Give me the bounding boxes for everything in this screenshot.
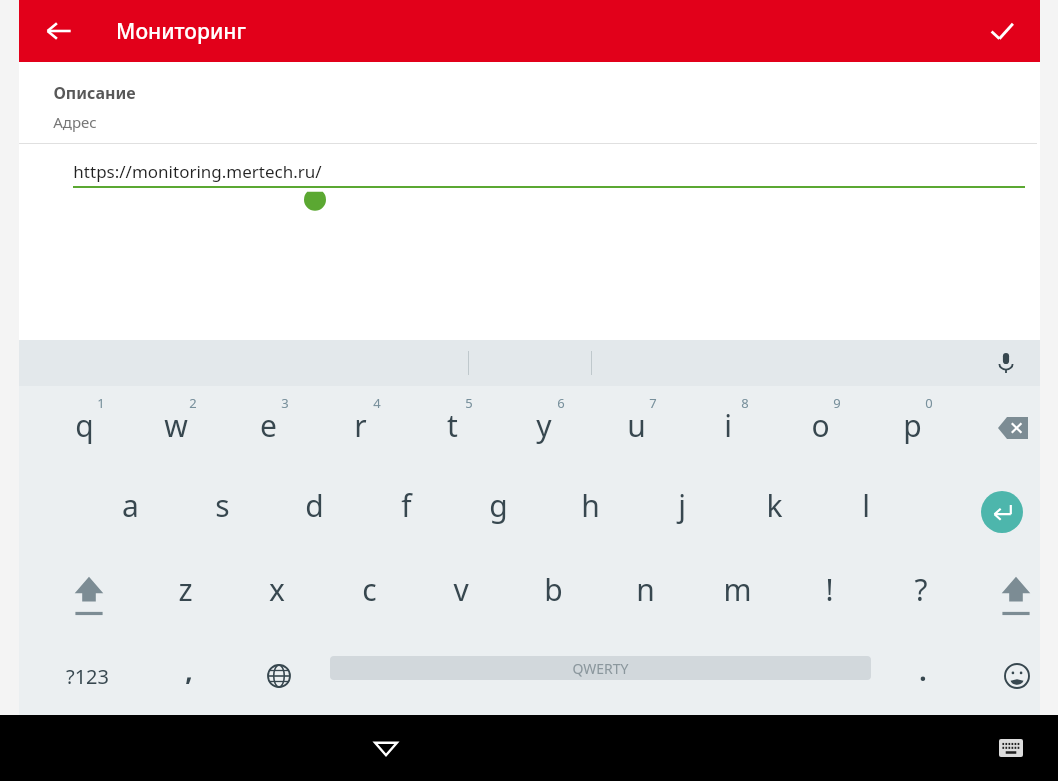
- button[interactable]: v: [415, 554, 507, 638]
- staticText: c: [362, 569, 377, 610]
- button[interactable]: 3: [222, 386, 314, 470]
- button[interactable]: a: [84, 470, 176, 554]
- staticText: h: [581, 485, 600, 526]
- button[interactable]: b: [507, 554, 599, 638]
- staticText: k: [766, 485, 783, 526]
- button[interactable]: x: [231, 554, 323, 638]
- button[interactable]: 4: [314, 386, 406, 470]
- staticText: .: [919, 653, 927, 688]
- button[interactable]: h: [544, 470, 636, 554]
- staticText: v: [453, 569, 469, 610]
- button[interactable]: Backspace: [969, 386, 1057, 470]
- button[interactable]: 9: [774, 386, 866, 470]
- button[interactable]: .: [887, 638, 959, 714]
- button[interactable]: 2: [130, 386, 222, 470]
- staticText: u: [627, 405, 646, 446]
- staticText: QWERTY: [572, 659, 629, 678]
- button[interactable]: ?: [875, 554, 967, 638]
- button[interactable]: !: [783, 554, 875, 638]
- staticText: y: [536, 405, 552, 446]
- staticText: 8: [741, 394, 749, 412]
- staticText: m: [723, 569, 752, 610]
- button[interactable]: Shift: [970, 554, 1058, 638]
- staticText: q: [75, 405, 94, 446]
- button[interactable]: ?123: [39, 638, 135, 714]
- staticText: Описание: [53, 82, 136, 104]
- staticText: j: [678, 485, 686, 526]
- staticText: w: [164, 405, 188, 446]
- button[interactable]: Emoji: [981, 638, 1053, 714]
- staticText: r: [354, 405, 367, 446]
- button[interactable]: Switch keyboard: [984, 721, 1038, 775]
- button[interactable]: Voice input: [986, 343, 1026, 383]
- button[interactable]: j: [636, 470, 728, 554]
- button[interactable]: Change language: [241, 638, 317, 714]
- staticText: n: [636, 569, 655, 610]
- button[interactable]: 1: [38, 386, 130, 470]
- button[interactable]: 5: [406, 386, 498, 470]
- button[interactable]: 7: [590, 386, 682, 470]
- staticText: 2: [189, 394, 197, 412]
- staticText: 4: [373, 394, 381, 412]
- button[interactable]: Back: [31, 3, 87, 59]
- staticText: ?123: [66, 663, 109, 690]
- staticText: t: [447, 405, 458, 446]
- staticText: l: [862, 485, 870, 526]
- button[interactable]: 0: [866, 386, 958, 470]
- button[interactable]: QWERTY: [330, 656, 871, 680]
- staticText: a: [122, 485, 139, 526]
- button[interactable]: m: [691, 554, 783, 638]
- button[interactable]: z: [139, 554, 231, 638]
- button[interactable]: l: [820, 470, 912, 554]
- staticText: 6: [557, 394, 565, 412]
- button[interactable]: g: [452, 470, 544, 554]
- staticText: f: [401, 485, 412, 526]
- staticText: Адрес: [53, 112, 97, 132]
- staticText: s: [215, 485, 230, 526]
- staticText: d: [305, 485, 324, 526]
- button[interactable]: d: [268, 470, 360, 554]
- staticText: https://monitoring.mertech.ru/: [73, 160, 322, 183]
- staticText: Мониторинг: [116, 17, 246, 46]
- staticText: x: [269, 569, 285, 610]
- button[interactable]: n: [599, 554, 691, 638]
- button[interactable]: s: [176, 470, 268, 554]
- staticText: b: [544, 569, 563, 610]
- button[interactable]: c: [323, 554, 415, 638]
- button[interactable]: 6: [498, 386, 590, 470]
- button[interactable]: f: [360, 470, 452, 554]
- staticText: 9: [833, 394, 841, 412]
- button[interactable]: 8: [682, 386, 774, 470]
- staticText: p: [903, 405, 922, 446]
- staticText: 0: [925, 394, 933, 412]
- staticText: g: [489, 485, 508, 526]
- staticText: 1: [97, 394, 105, 412]
- staticText: i: [724, 405, 732, 446]
- button[interactable]: Enter: [947, 474, 1057, 550]
- button[interactable]: Hide keyboard: [355, 717, 417, 779]
- staticText: 7: [649, 394, 657, 412]
- staticText: 3: [281, 394, 289, 412]
- button[interactable]: Shift: [43, 554, 135, 638]
- staticText: ,: [185, 653, 193, 688]
- button[interactable]: Save: [974, 3, 1030, 59]
- button[interactable]: k: [728, 470, 820, 554]
- staticText: z: [178, 569, 193, 610]
- staticText: e: [260, 405, 277, 446]
- staticText: ?: [914, 569, 928, 610]
- staticText: o: [811, 405, 830, 446]
- staticText: !: [825, 569, 834, 610]
- staticText: 5: [465, 394, 473, 412]
- button[interactable]: https://monitoring.mertech.ru/: [19, 158, 1040, 204]
- button[interactable]: ,: [149, 638, 229, 714]
